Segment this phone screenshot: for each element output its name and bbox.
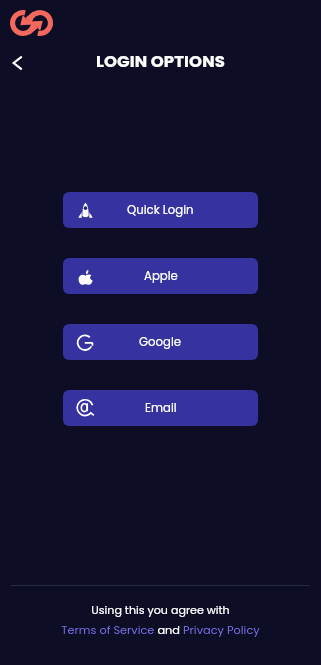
- staticText: Google: [139, 334, 182, 350]
- staticText: Quick Login: [127, 202, 194, 218]
- button[interactable]: Back: [1, 48, 33, 77]
- button[interactable]: Sign in with Google: [63, 324, 258, 360]
- staticText: Email: [145, 400, 177, 416]
- staticText: LOGIN OPTIONS: [96, 50, 225, 73]
- button[interactable]: Sign in with Email: [63, 390, 258, 426]
- button[interactable]: Sign in with Apple: [63, 258, 258, 294]
- button[interactable]: Quick Login: [63, 192, 258, 228]
- button[interactable]: Terms of Service and Privacy Policy: [0, 622, 321, 638]
- staticText: Apple: [144, 268, 178, 284]
- staticText: Using this you agree with: [0, 602, 321, 618]
